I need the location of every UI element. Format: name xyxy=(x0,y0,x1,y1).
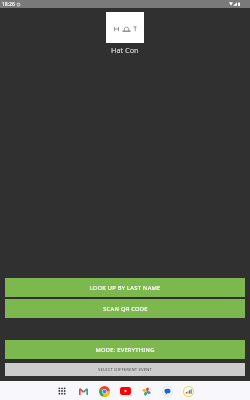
staticText: 18:26 xyxy=(2,1,15,8)
button[interactable]: SCAN QR CODE xyxy=(5,299,245,318)
button[interactable]: Messages xyxy=(161,385,173,397)
button[interactable]: Gmail xyxy=(77,385,89,397)
button[interactable]: LOOK UP BY LAST NAME xyxy=(5,278,245,297)
staticText: MODE: EVERYTHING xyxy=(95,346,155,354)
button[interactable]: Google Photos xyxy=(140,385,152,397)
button[interactable]: YouTube xyxy=(119,385,131,397)
button[interactable]: Analytics xyxy=(182,385,194,397)
button[interactable]: SELECT DIFFERENT EVENT xyxy=(5,363,245,376)
staticText: LOOK UP BY LAST NAME xyxy=(89,284,161,292)
button[interactable]: All apps xyxy=(56,385,68,397)
staticText: SELECT DIFFERENT EVENT xyxy=(98,367,152,373)
staticText: Hat Con xyxy=(111,45,139,55)
button[interactable]: MODE: EVERYTHING xyxy=(5,340,245,359)
staticText: SCAN QR CODE xyxy=(103,305,148,313)
button[interactable]: Chrome xyxy=(98,385,110,397)
